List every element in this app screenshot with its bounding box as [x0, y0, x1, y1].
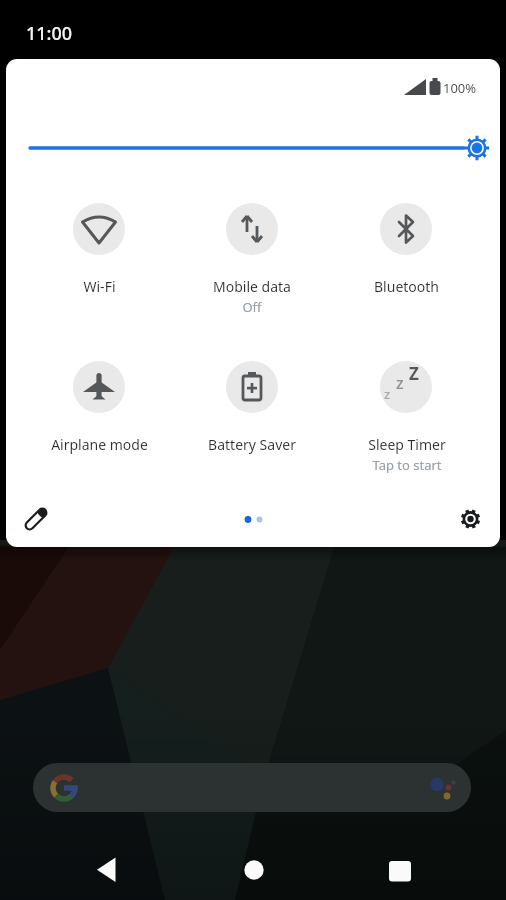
- staticText: 100%: [443, 79, 477, 97]
- button[interactable]: [229, 845, 279, 895]
- button[interactable]: [226, 203, 278, 255]
- staticText: Z: [409, 362, 419, 385]
- staticText: Tap to start: [372, 456, 442, 474]
- button[interactable]: [452, 501, 488, 537]
- button[interactable]: [226, 361, 278, 413]
- staticText: z: [396, 372, 404, 394]
- button[interactable]: [73, 203, 125, 255]
- staticText: Sleep Timer: [368, 435, 446, 454]
- button[interactable]: [375, 845, 425, 895]
- button[interactable]: [380, 203, 432, 255]
- staticText: z: [384, 385, 391, 403]
- button[interactable]: [82, 845, 132, 895]
- button[interactable]: [380, 361, 432, 413]
- staticText: Battery Saver: [208, 435, 296, 454]
- staticText: Wi-Fi: [83, 277, 116, 296]
- button[interactable]: [33, 763, 471, 812]
- staticText: Mobile data: [213, 277, 291, 296]
- button[interactable]: [18, 501, 54, 537]
- button[interactable]: [73, 361, 125, 413]
- staticText: Airplane mode: [51, 435, 148, 454]
- staticText: 11:00: [26, 21, 73, 46]
- staticText: Off: [242, 298, 262, 316]
- staticText: Bluetooth: [374, 277, 439, 296]
